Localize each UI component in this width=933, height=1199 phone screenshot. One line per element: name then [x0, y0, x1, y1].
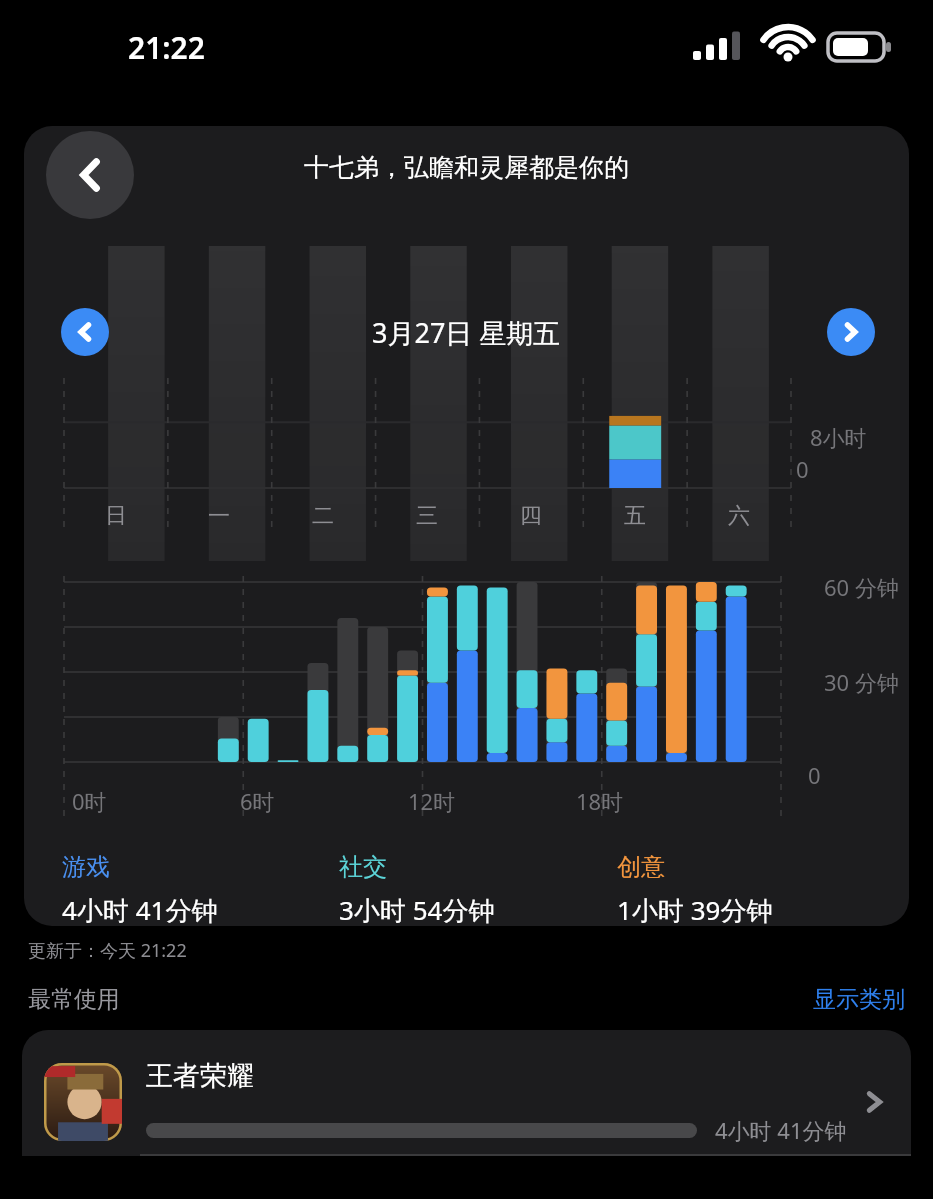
- button[interactable]: Previous day: [61, 308, 109, 356]
- staticText: 十七弟，弘瞻和灵犀都是你的: [304, 152, 629, 183]
- staticText: 二: [312, 502, 334, 530]
- other: Open app details: [861, 1089, 887, 1115]
- button[interactable]: 创意: [617, 852, 881, 926]
- staticText: 3小时 54分钟: [339, 892, 495, 926]
- staticText: 4小时 41分钟: [62, 892, 218, 926]
- button[interactable]: 显示类别: [813, 985, 905, 1014]
- staticText: 0: [808, 760, 821, 790]
- staticText: 显示类别: [813, 985, 905, 1014]
- staticText: 社交: [339, 852, 387, 882]
- staticText: 21:22: [128, 27, 205, 68]
- staticText: 更新于：今天 21:22: [28, 938, 187, 963]
- staticText: 18时: [576, 786, 624, 816]
- staticText: 王者荣耀: [146, 1059, 254, 1093]
- staticText: 创意: [617, 852, 665, 882]
- button[interactable]: Next day: [827, 308, 875, 356]
- staticText: 五: [624, 502, 646, 530]
- staticText: 0时: [72, 786, 107, 816]
- staticText: 一: [208, 502, 230, 530]
- button[interactable]: 王者荣耀: [44, 1048, 887, 1156]
- button[interactable]: Back: [46, 131, 134, 219]
- staticText: 0: [796, 454, 809, 484]
- staticText: 最常使用: [28, 985, 120, 1014]
- staticText: 8小时: [810, 422, 867, 452]
- button[interactable]: 社交: [339, 852, 617, 926]
- staticText: 四: [520, 502, 542, 530]
- staticText: 游戏: [62, 852, 110, 882]
- staticText: 1小时 39分钟: [617, 892, 773, 926]
- staticText: 日: [105, 502, 127, 530]
- staticText: 6时: [240, 786, 275, 816]
- staticText: 六: [728, 502, 750, 530]
- button[interactable]: 游戏: [62, 852, 339, 926]
- staticText: 12时: [408, 786, 456, 816]
- staticText: 3月27日 星期五: [372, 314, 561, 351]
- staticText: 60 分钟: [824, 572, 899, 602]
- staticText: 4小时 41分钟: [715, 1115, 847, 1145]
- staticText: 三: [416, 502, 438, 530]
- staticText: 30 分钟: [824, 667, 899, 697]
